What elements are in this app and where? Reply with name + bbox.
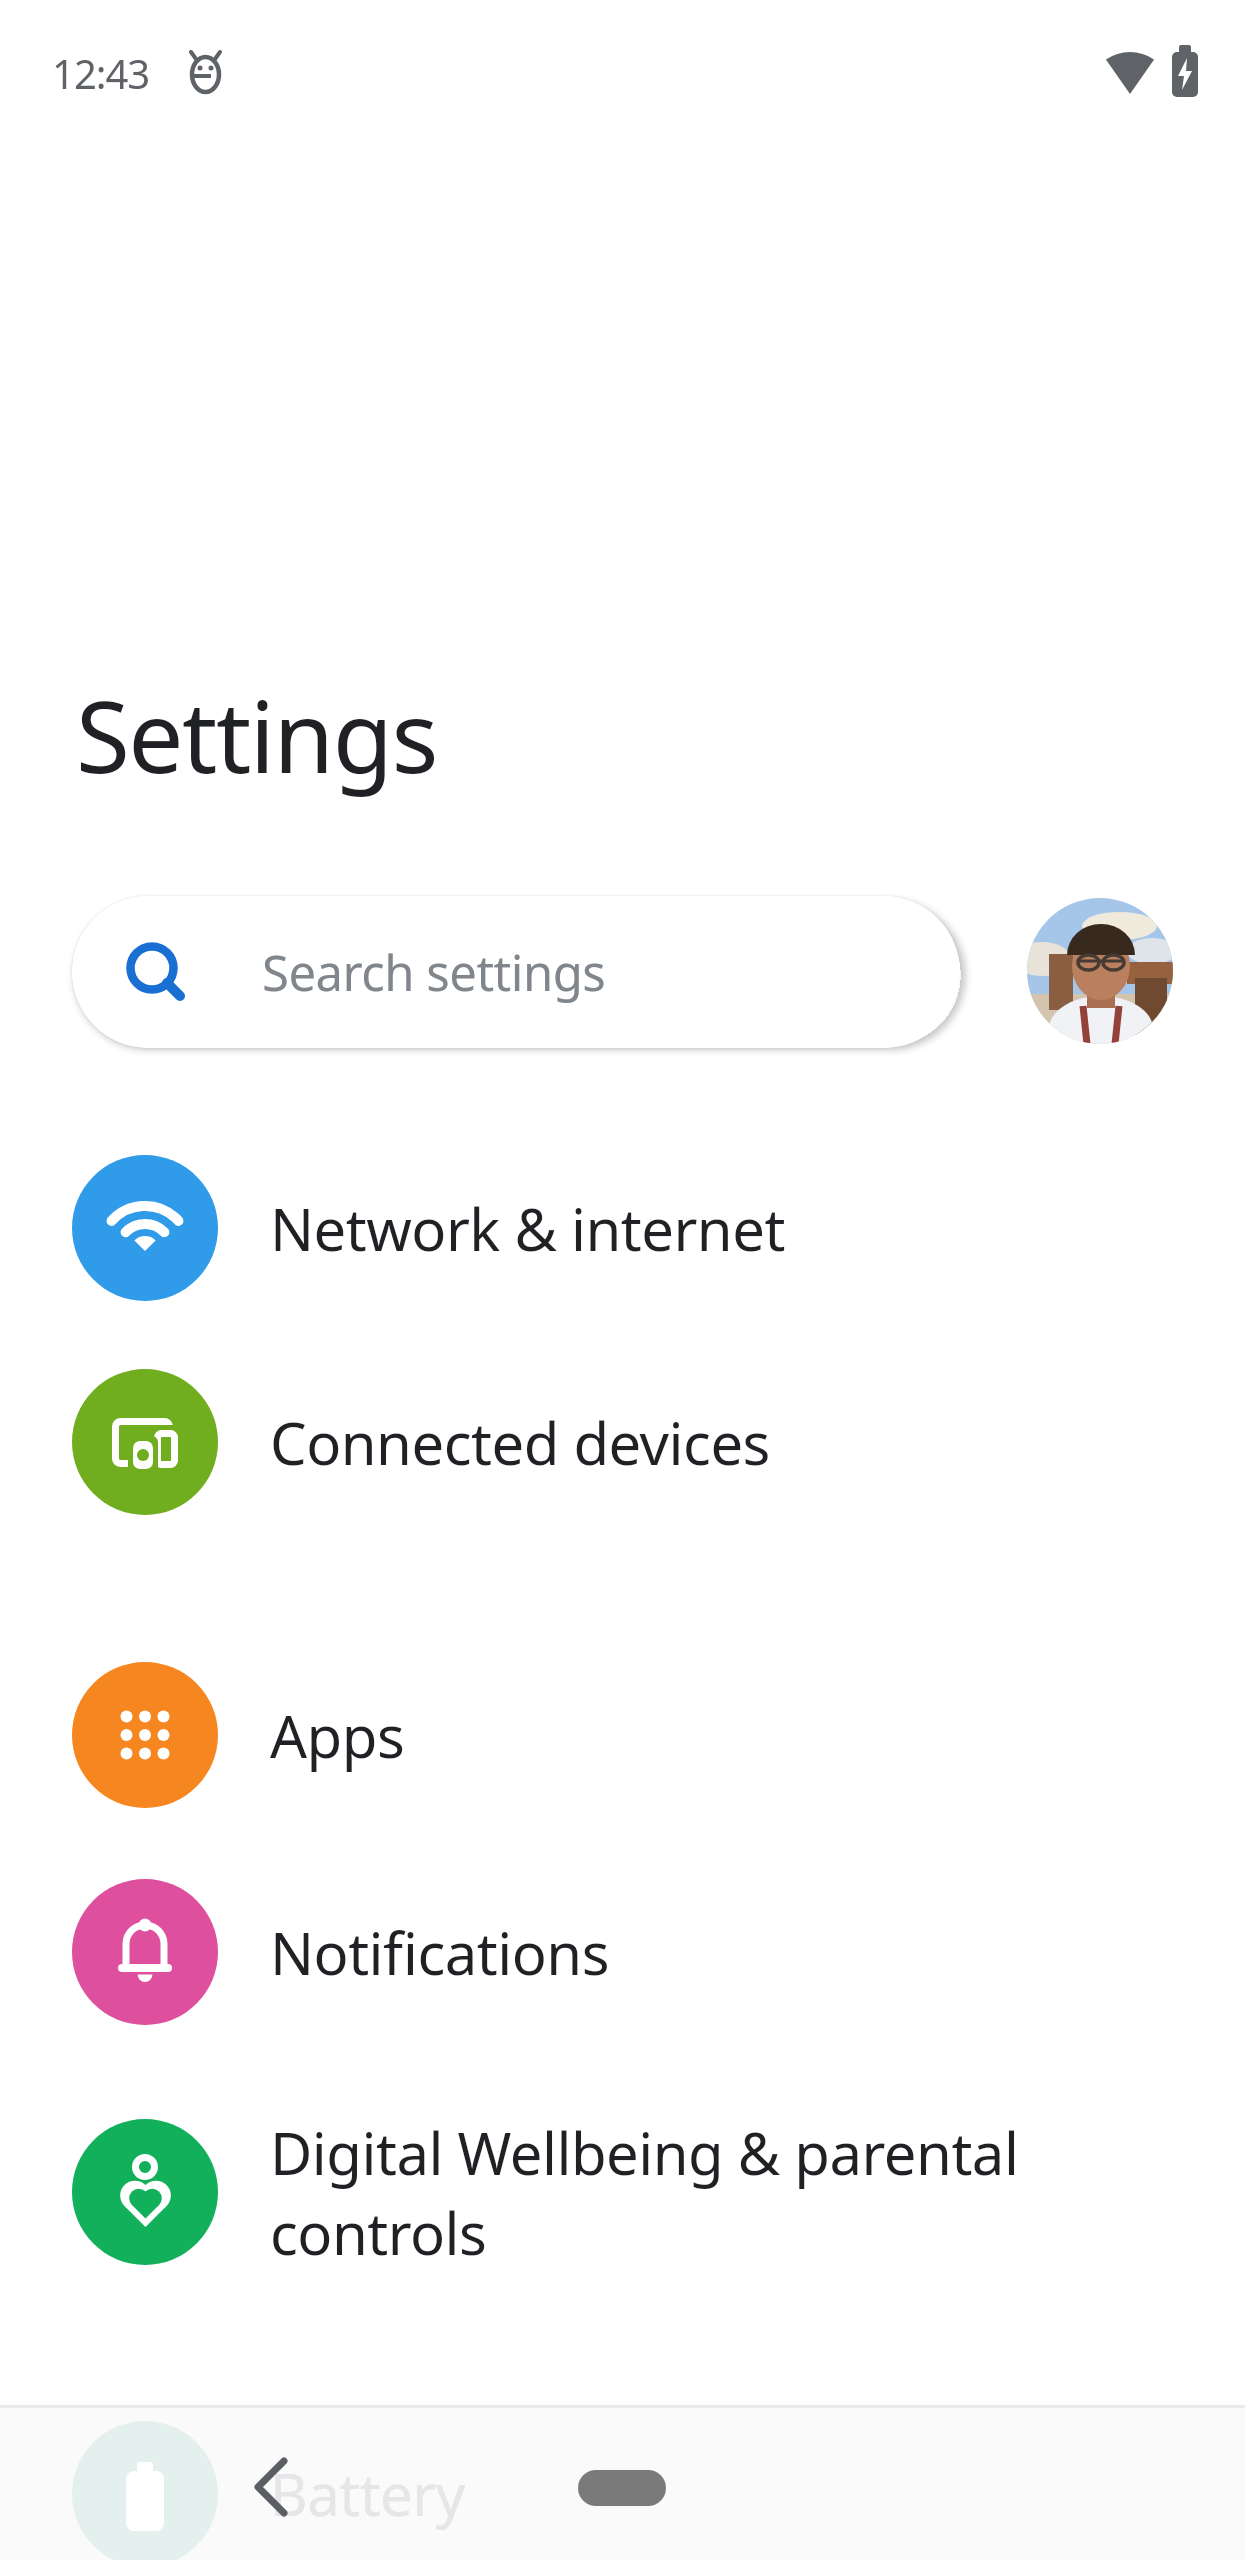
button[interactable]: Network & internet: [0, 1121, 1245, 1335]
staticText: Search settings: [262, 939, 606, 1006]
button[interactable]: Connected devices: [0, 1335, 1245, 1549]
staticText: Battery: [270, 2454, 465, 2533]
staticText: 12:43: [52, 46, 150, 100]
staticText: Apps: [270, 1696, 405, 1775]
staticText: Connected devices: [270, 1403, 770, 1482]
button[interactable]: Digital Wellbeing & parental controls: [0, 2085, 1245, 2299]
staticText: Notifications: [270, 1913, 609, 1992]
button[interactable]: [578, 2470, 666, 2506]
button[interactable]: Notifications: [0, 1845, 1245, 2059]
staticText: Digital Wellbeing & parental controls: [270, 2113, 1019, 2272]
staticText: Network & internet: [270, 1189, 785, 1268]
button[interactable]: Search settings: [72, 896, 960, 1048]
button[interactable]: [1027, 898, 1173, 1044]
staticText: Settings: [76, 668, 437, 801]
button[interactable]: Apps: [0, 1628, 1245, 1842]
